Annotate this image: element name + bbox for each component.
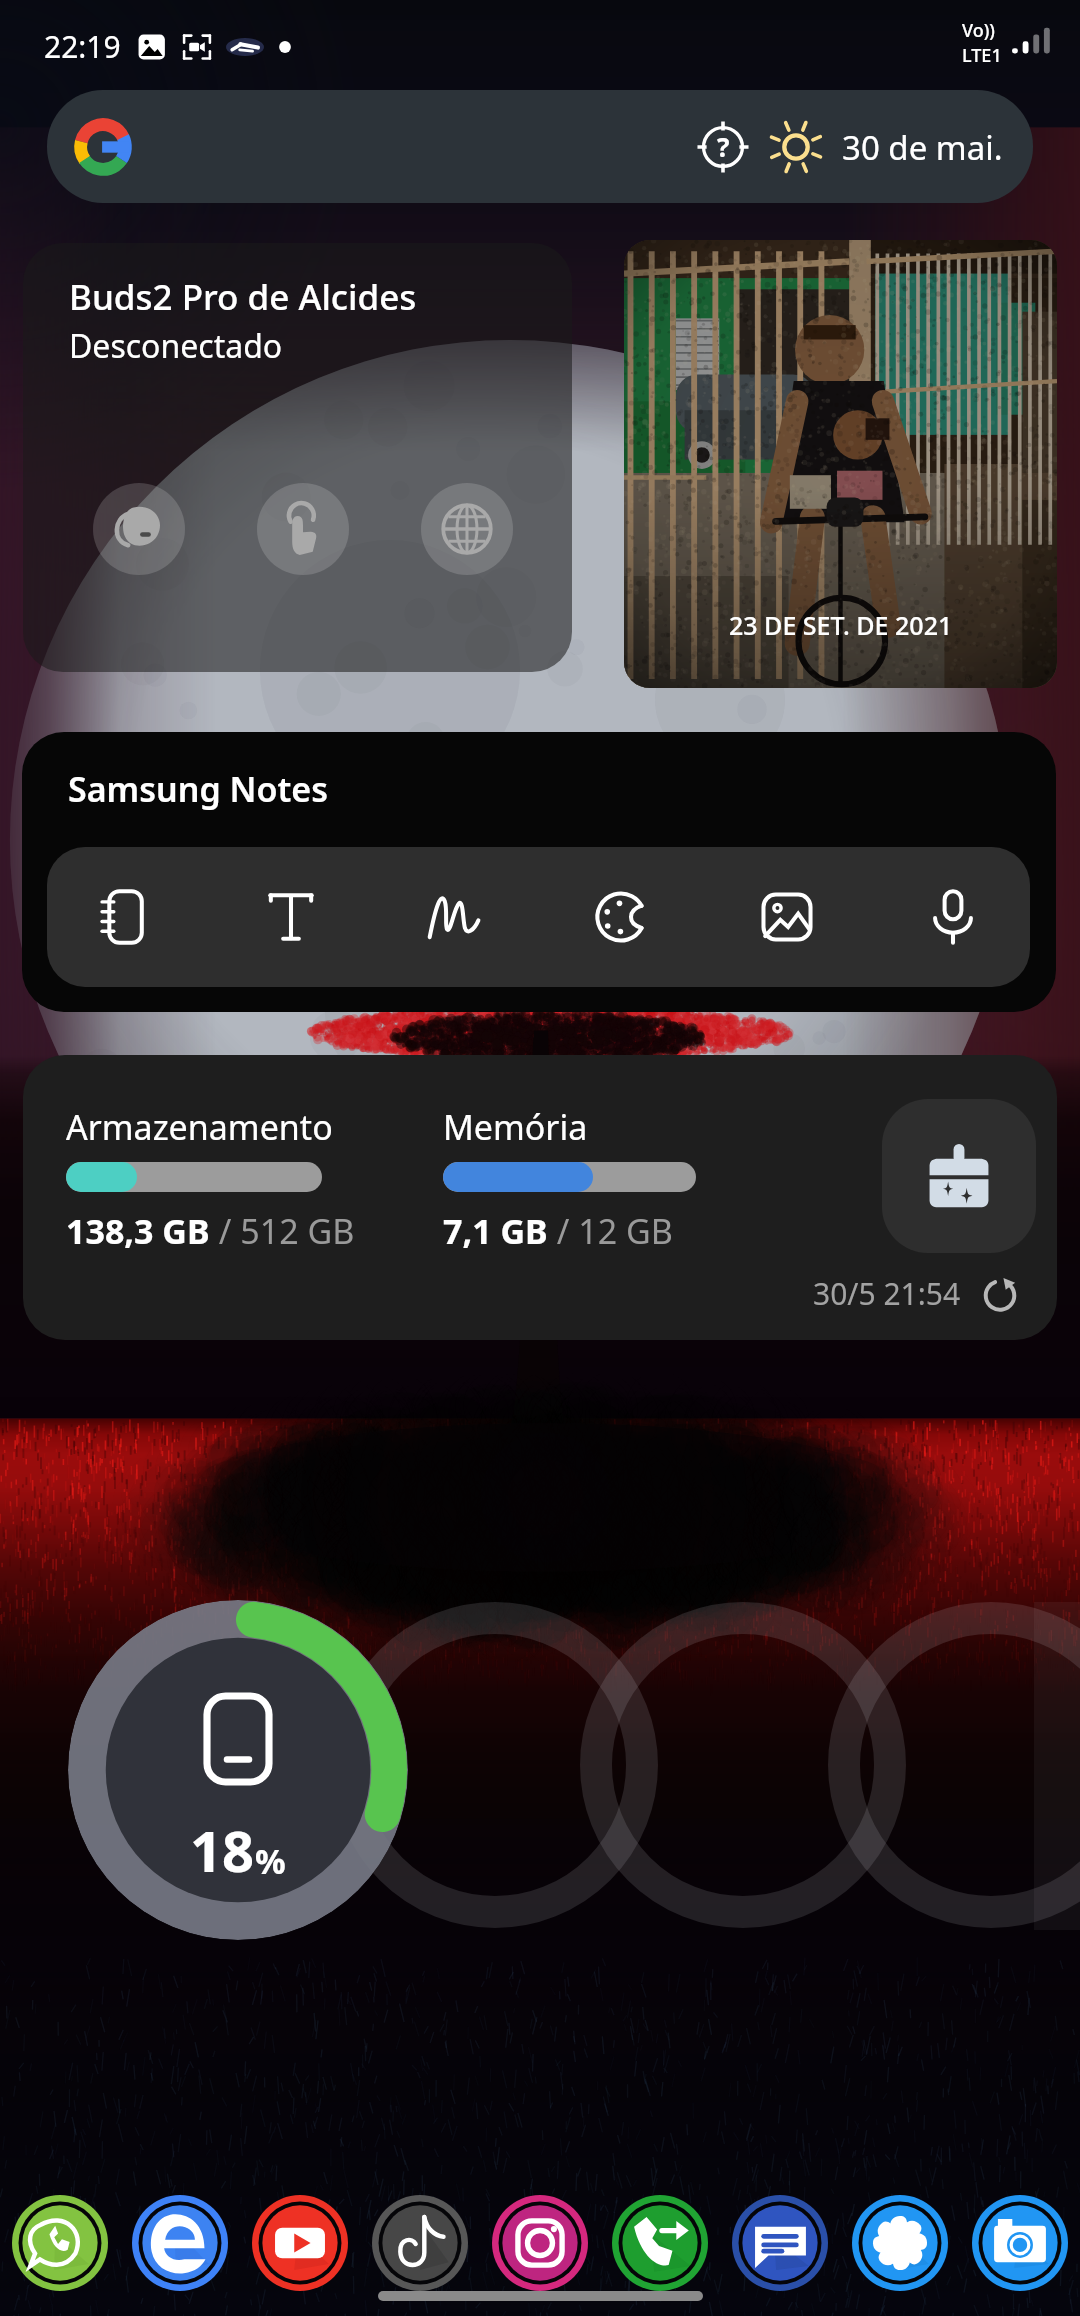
button[interactable]: TikTok xyxy=(368,2191,472,2295)
button[interactable]: Handwriting xyxy=(401,862,511,972)
staticText: 18 xyxy=(190,1812,255,1888)
button[interactable]: Clean memory xyxy=(882,1099,1036,1253)
button[interactable]: Gallery xyxy=(848,2191,952,2295)
staticText: 22:19 xyxy=(44,26,121,67)
button[interactable]: Drawing xyxy=(567,862,677,972)
button[interactable]: Find xyxy=(421,483,513,575)
staticText: Desconectado xyxy=(69,324,283,368)
button[interactable]: Earbuds xyxy=(93,483,185,575)
button[interactable]: Voice xyxy=(898,862,1008,972)
other: Refresh xyxy=(979,1272,1021,1314)
button[interactable]: YouTube xyxy=(248,2191,352,2295)
button[interactable]: Touch control xyxy=(257,483,349,575)
button[interactable]: Instagram xyxy=(488,2191,592,2295)
button[interactable]: Edge xyxy=(128,2191,232,2295)
staticText: / 512 GB xyxy=(210,1208,355,1254)
staticText: 30 de mai. xyxy=(842,125,1003,170)
staticText: 30/5 21:54 xyxy=(813,1273,961,1314)
staticText: LTE1 xyxy=(962,43,1002,68)
staticText: Vo)) xyxy=(962,18,995,43)
button[interactable]: Lens xyxy=(47,90,1033,203)
button[interactable]: Text xyxy=(236,862,346,972)
staticText: Samsung Notes xyxy=(68,766,328,812)
button[interactable]: Note xyxy=(70,862,180,972)
button[interactable]: Buds2 Pro de Alcides xyxy=(23,243,572,672)
button[interactable]: Messages xyxy=(728,2191,832,2295)
button[interactable]: Image xyxy=(732,862,842,972)
button[interactable]: Camera xyxy=(968,2191,1072,2295)
button[interactable]: WhatsApp xyxy=(8,2191,112,2295)
staticText: 7,1 GB xyxy=(443,1208,548,1254)
staticText: Armazenamento xyxy=(66,1104,333,1150)
staticText: ? xyxy=(717,129,730,164)
staticText: 138,3 GB xyxy=(66,1208,210,1254)
staticText: Buds2 Pro de Alcides xyxy=(69,273,417,321)
button[interactable]: Lens xyxy=(694,118,752,176)
button[interactable]: Photo 23 de set. de 2021 xyxy=(624,240,1057,688)
staticText: Memória xyxy=(443,1104,588,1150)
other: Weather xyxy=(766,117,826,177)
staticText: % xyxy=(255,1838,286,1884)
staticText: / 12 GB xyxy=(548,1208,673,1254)
button[interactable]: Phone xyxy=(608,2191,712,2295)
staticText: 23 DE SET. DE 2021 xyxy=(729,608,953,642)
button[interactable]: Battery 18 percent xyxy=(68,1600,408,1940)
